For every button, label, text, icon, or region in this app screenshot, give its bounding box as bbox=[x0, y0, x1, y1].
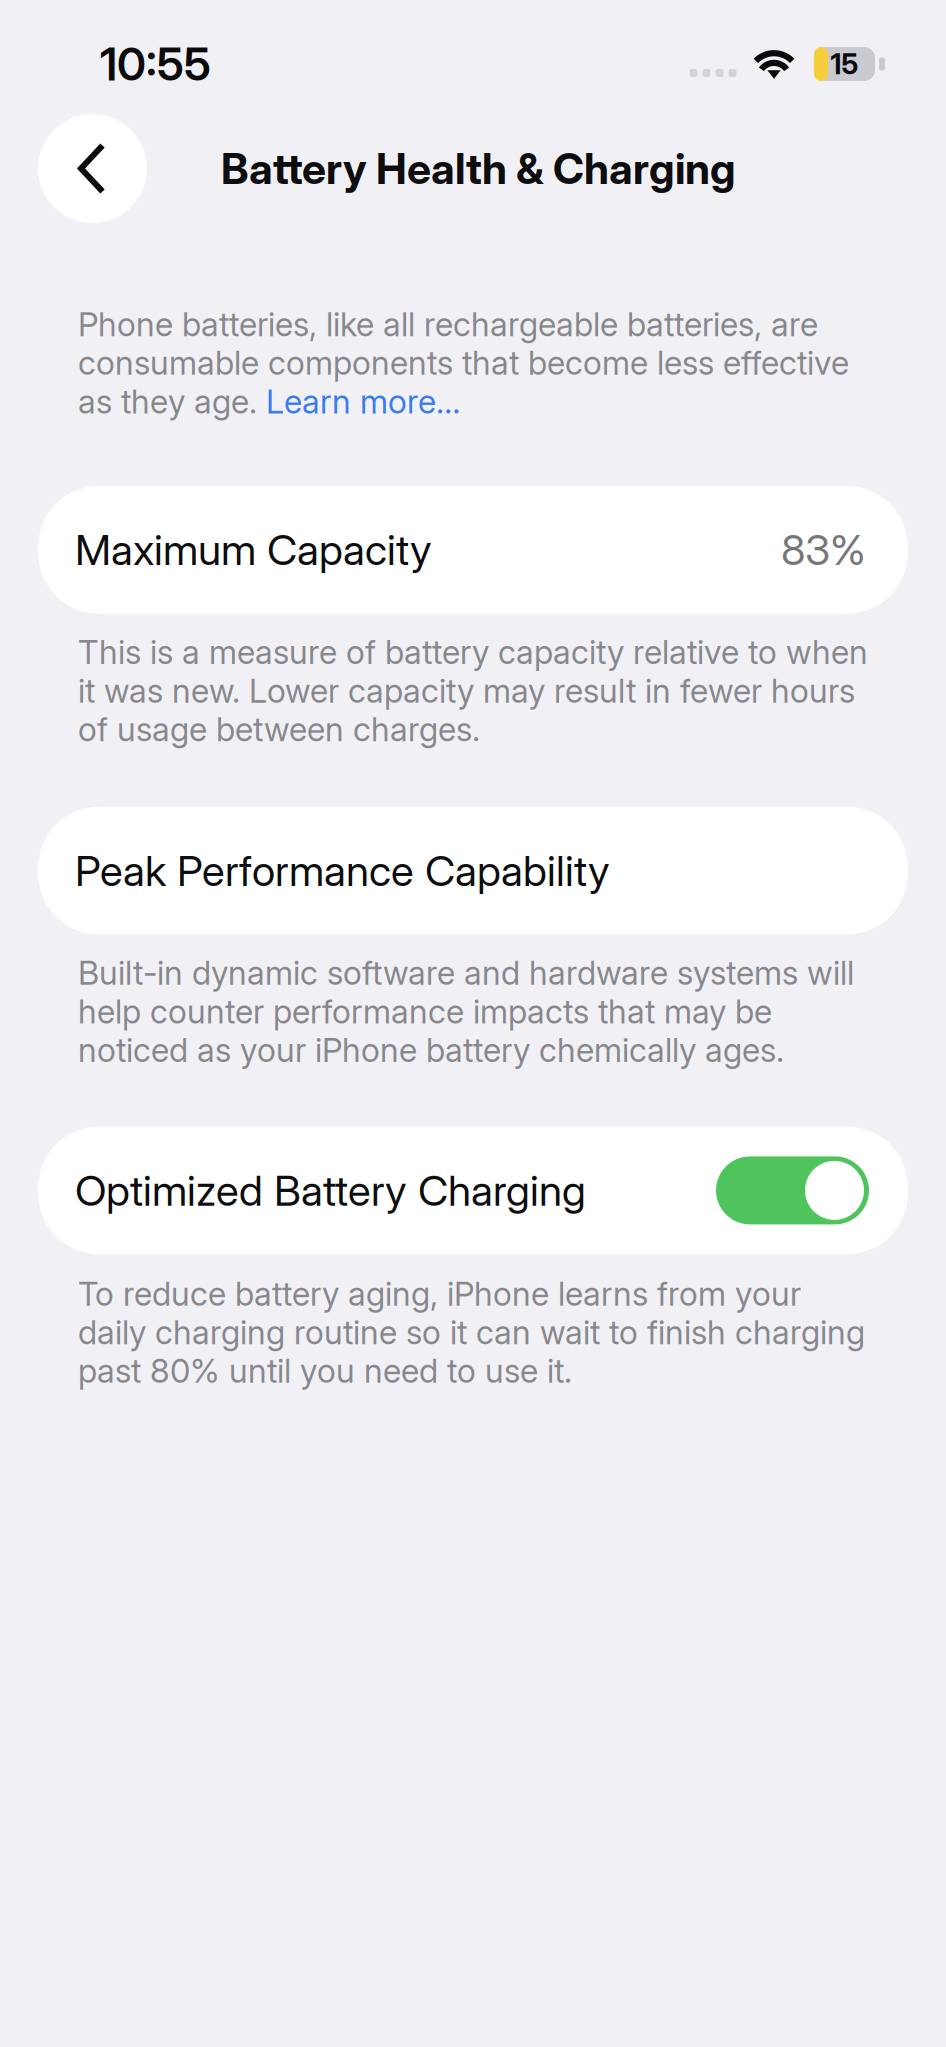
staticText: Phone batteries, like all rechargeable b… bbox=[78, 304, 818, 344]
staticText: consumable components that become less e… bbox=[78, 343, 849, 383]
staticText: 83% bbox=[781, 524, 866, 575]
staticText: This is a measure of battery capacity re… bbox=[78, 632, 868, 672]
staticText: Built-in dynamic software and hardware s… bbox=[78, 953, 854, 993]
staticText: of usage between charges. bbox=[78, 709, 480, 749]
button[interactable]: Optimized Battery Charging bbox=[38, 1126, 908, 1254]
staticText: Learn more… bbox=[266, 382, 460, 421]
staticText: Peak Performance Capability bbox=[75, 845, 610, 896]
staticText: past 80% until you need to use it. bbox=[78, 1351, 572, 1391]
staticText: 10:55 bbox=[100, 37, 211, 91]
staticText: noticed as your iPhone battery chemicall… bbox=[78, 1030, 784, 1070]
staticText: Battery Health & Charging bbox=[221, 143, 736, 194]
button[interactable]: Maximum Capacity bbox=[38, 486, 908, 614]
staticText: 15 bbox=[830, 47, 858, 81]
button[interactable]: Back bbox=[38, 114, 147, 223]
button[interactable]: Peak Performance Capability bbox=[38, 807, 908, 935]
staticText: it was new. Lower capacity may result in… bbox=[78, 671, 855, 711]
button[interactable]: Learn more… bbox=[266, 382, 460, 421]
staticText: as they age. bbox=[78, 382, 266, 421]
staticText: Optimized Battery Charging bbox=[75, 1165, 586, 1216]
staticText: help counter performance impacts that ma… bbox=[78, 992, 772, 1031]
staticText: daily charging routine so it can wait to… bbox=[78, 1312, 865, 1352]
staticText: Maximum Capacity bbox=[75, 524, 432, 575]
staticText: To reduce battery aging, iPhone learns f… bbox=[78, 1274, 801, 1314]
